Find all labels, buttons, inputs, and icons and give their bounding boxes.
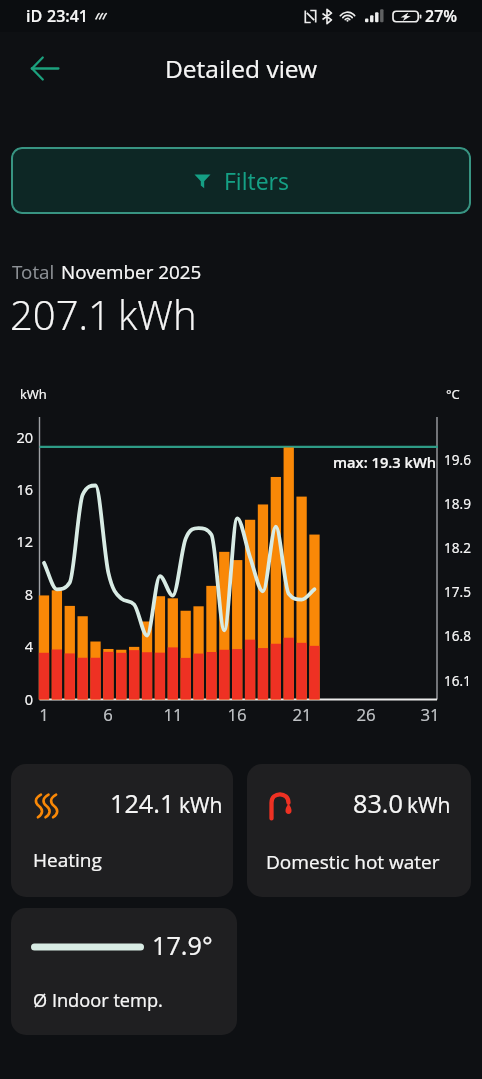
staticText: Total (12, 259, 55, 285)
staticText: Filters (224, 165, 289, 196)
staticText: 0 (24, 690, 33, 710)
staticText: 23:41 (47, 5, 88, 27)
staticText: 18.2 (444, 538, 471, 557)
staticText: °C (446, 385, 460, 403)
staticText: kWh (179, 791, 223, 820)
staticText: 207.1 (10, 287, 111, 341)
staticText: kWh (20, 385, 47, 403)
button[interactable]: 124.1 (11, 764, 233, 897)
staticText: 6 (103, 703, 113, 726)
staticText: 12 (16, 532, 33, 552)
staticText: Domestic hot water (266, 849, 440, 875)
staticText: 1 (39, 703, 49, 726)
staticText: 17.5 (444, 582, 471, 601)
staticText: 8 (24, 585, 33, 605)
staticText: 26 (356, 703, 376, 726)
staticText: 21 (292, 703, 312, 726)
staticText: 31 (420, 703, 440, 726)
staticText: 17.9° (152, 928, 213, 962)
button[interactable]: Filters (11, 147, 471, 214)
staticText: 16 (16, 480, 33, 500)
staticText: max: 19.3 kWh (333, 452, 437, 472)
button[interactable]: 83.0 (247, 764, 471, 897)
staticText: 4 (24, 637, 33, 657)
button[interactable]: 17.9° (11, 908, 237, 1035)
staticText: 27% (425, 5, 458, 27)
staticText: 16.1 (444, 671, 471, 690)
staticText: 124.1 (110, 786, 175, 820)
staticText: 83.0 (353, 786, 403, 820)
staticText: 20 (16, 428, 33, 448)
staticText: Ø Indoor temp. (33, 988, 163, 1013)
staticText: 16.8 (444, 626, 471, 645)
staticText: 19.6 (444, 450, 471, 469)
staticText: 11 (163, 703, 183, 726)
button[interactable]: Back (24, 48, 64, 88)
staticText: 16 (227, 703, 247, 726)
staticText: November 2025 (61, 259, 202, 285)
staticText: kWh (407, 791, 451, 820)
staticText: Heating (33, 847, 102, 873)
staticText: 18.9 (444, 494, 471, 513)
staticText: Detailed view (165, 52, 318, 85)
staticText: kWh (118, 287, 197, 341)
staticText: iD (26, 5, 43, 27)
